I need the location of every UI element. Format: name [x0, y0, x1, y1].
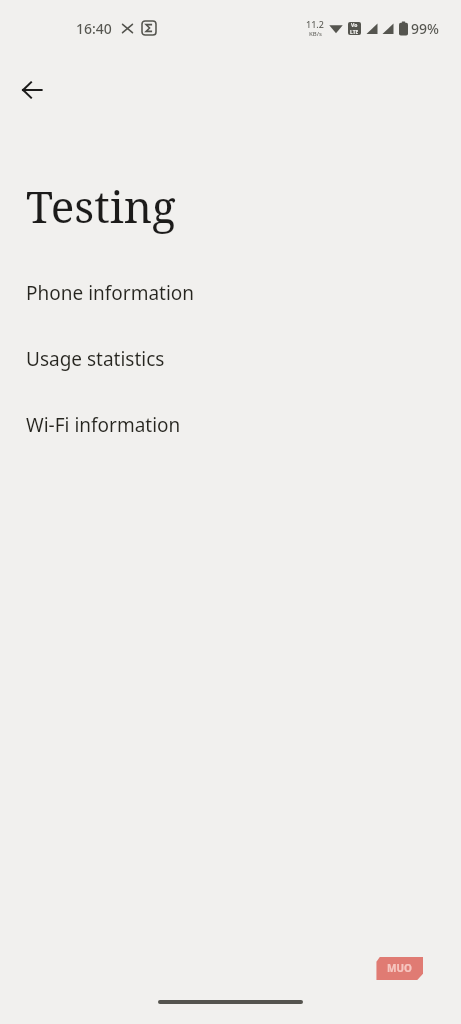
staticText: 16:40	[76, 19, 112, 38]
staticText: Usage statistics	[26, 346, 165, 372]
button[interactable]: Back	[10, 68, 54, 112]
staticText: Vo	[351, 22, 358, 29]
button[interactable]: Phone information	[0, 270, 461, 316]
button[interactable]: Wi-Fi information	[0, 402, 461, 448]
staticText: Testing	[26, 176, 176, 236]
button[interactable]: Usage statistics	[0, 336, 461, 382]
staticText: MUO	[387, 961, 412, 975]
staticText: Wi-Fi information	[26, 412, 181, 438]
staticText: 11.2	[306, 18, 324, 30]
staticText: KB/s	[309, 30, 322, 38]
staticText: Phone information	[26, 280, 195, 306]
staticText: 99%	[411, 19, 439, 38]
staticText: LTE	[350, 29, 359, 35]
